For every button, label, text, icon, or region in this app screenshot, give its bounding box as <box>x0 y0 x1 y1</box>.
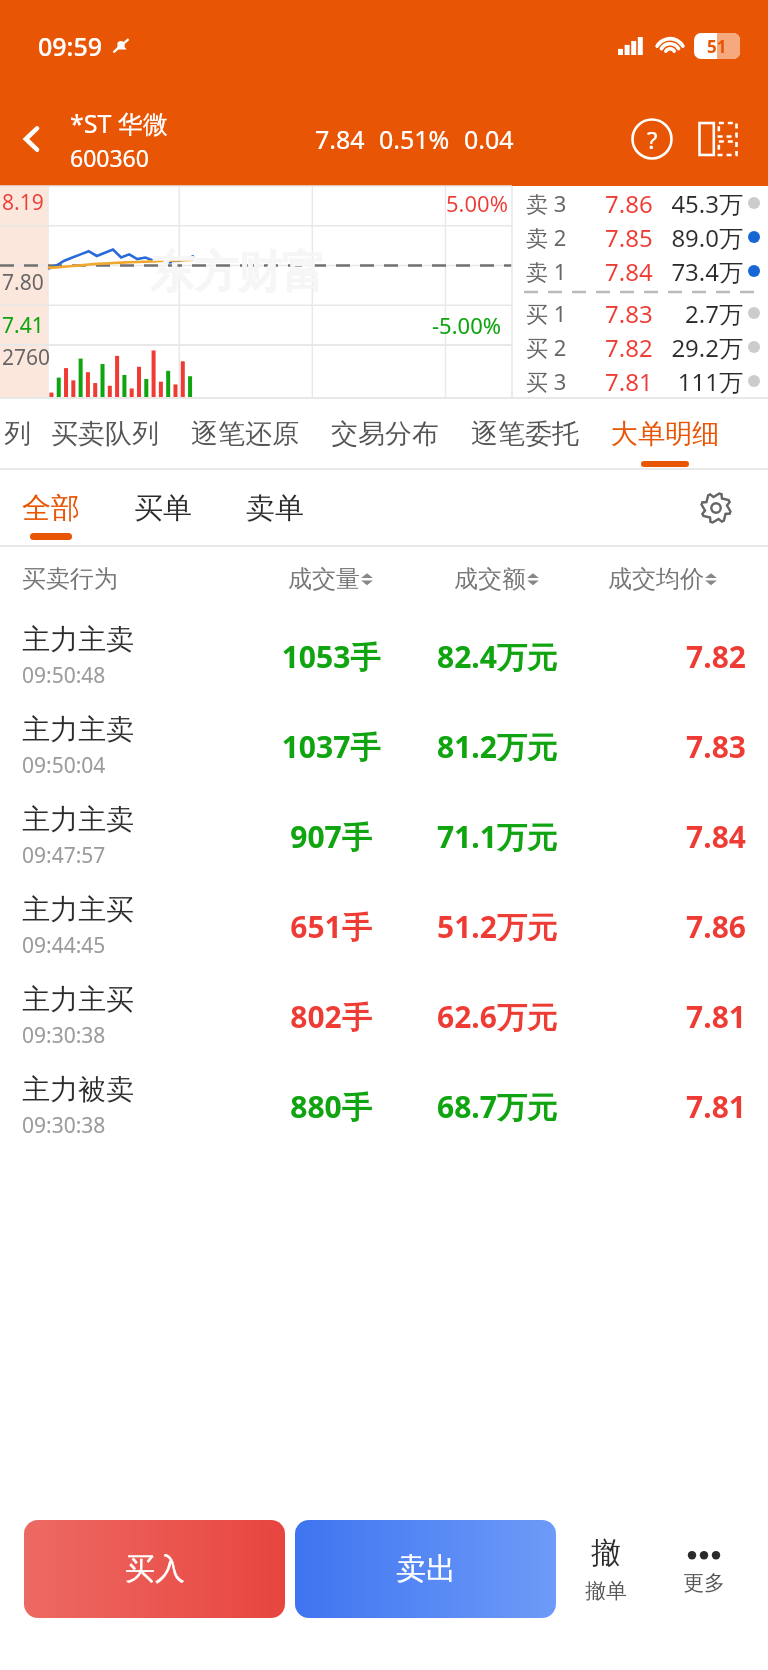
staticText: 买卖队列 <box>51 417 159 451</box>
staticText: 主力主卖 <box>22 712 134 747</box>
staticText: 82.4万元 <box>414 636 580 677</box>
staticText: 907手 <box>248 816 414 857</box>
staticText: 买卖行为 <box>22 564 248 594</box>
button[interactable]: 卖 2 <box>512 220 768 254</box>
staticText: 卖单 <box>246 490 304 527</box>
staticText: 7.41 <box>2 311 44 340</box>
button[interactable]: 卖 3 <box>512 186 768 220</box>
staticText: 列 <box>4 417 31 451</box>
staticText: 73.4万 <box>659 255 743 288</box>
staticText: 7.82 <box>605 331 653 364</box>
staticText: 主力主买 <box>22 892 134 927</box>
staticText: 1037手 <box>248 726 414 767</box>
staticText: 卖 1 <box>526 256 567 286</box>
button[interactable]: 更多 <box>656 1494 752 1644</box>
staticText: 7.83 <box>605 297 653 330</box>
staticText: 买入 <box>125 1550 185 1588</box>
staticText: 成交额 <box>454 564 526 594</box>
button[interactable]: 主力主卖 <box>0 611 768 701</box>
staticText: 62.6万元 <box>414 996 580 1037</box>
button[interactable]: 列 <box>4 399 31 469</box>
staticText: 651手 <box>248 906 414 947</box>
button[interactable]: 卖 1 <box>512 254 768 288</box>
button[interactable]: 成交量 <box>248 564 414 594</box>
staticText: 逐笔还原 <box>191 417 299 451</box>
staticText: 卖出 <box>396 1550 456 1588</box>
button[interactable]: 主力主买 <box>0 881 768 971</box>
staticText: 8.19 <box>2 188 44 217</box>
staticText: 71.1万元 <box>414 816 580 857</box>
staticText: 111万 <box>659 365 743 398</box>
staticText: 7.85 <box>605 221 653 254</box>
staticText: 2760 <box>2 343 51 372</box>
staticText: 7.81 <box>580 996 746 1037</box>
staticText: 全部 <box>22 490 80 527</box>
staticText: 7.83 <box>580 726 746 767</box>
button[interactable]: Settings <box>688 480 744 536</box>
staticText: 7.81 <box>580 1086 746 1127</box>
button[interactable]: 逐笔委托 <box>471 399 579 469</box>
button[interactable]: 主力主卖 <box>0 701 768 791</box>
staticText: 东方财富 <box>150 245 326 300</box>
button[interactable]: 主力被卖 <box>0 1061 768 1151</box>
staticText: -5.00% <box>432 310 502 340</box>
button[interactable]: 买卖队列 <box>51 399 159 469</box>
button[interactable]: 全部 <box>22 470 80 546</box>
staticText: 68.7万元 <box>414 1086 580 1127</box>
button[interactable]: 主力主卖 <box>0 791 768 881</box>
staticText: 0.51% <box>379 122 450 156</box>
staticText: 802手 <box>248 996 414 1037</box>
button[interactable]: 买 2 <box>512 330 768 364</box>
button[interactable]: 主力主买 <box>0 971 768 1061</box>
button[interactable]: 大单明细 <box>611 399 719 469</box>
button[interactable]: 卖出 <box>295 1520 556 1618</box>
button[interactable]: 卖单 <box>246 470 304 546</box>
button[interactable]: 撤 <box>556 1494 656 1644</box>
staticText: 09:30:38 <box>22 1111 106 1140</box>
staticText: 09:44:45 <box>22 931 106 960</box>
button[interactable]: Help <box>622 109 682 169</box>
staticText: 7.84 <box>315 122 365 156</box>
staticText: 买单 <box>134 490 192 527</box>
staticText: 主力主卖 <box>22 802 134 837</box>
staticText: 7.86 <box>605 187 653 220</box>
staticText: 09:47:57 <box>22 841 106 870</box>
staticText: 09:30:38 <box>22 1021 106 1050</box>
staticText: 成交均价 <box>608 564 704 594</box>
staticText: 0.04 <box>464 122 514 156</box>
staticText: 45.3万 <box>659 187 743 220</box>
button[interactable]: 交易分布 <box>331 399 439 469</box>
staticText: 7.81 <box>605 365 653 398</box>
staticText: 89.0万 <box>659 221 743 254</box>
staticText: 09:59 <box>38 29 103 63</box>
staticText: 撤 <box>591 1534 621 1572</box>
staticText: 成交量 <box>288 564 360 594</box>
button[interactable]: 买 3 <box>512 364 768 398</box>
staticText: 7.84 <box>605 255 653 288</box>
staticText: 主力主买 <box>22 982 134 1017</box>
staticText: 09:50:04 <box>22 751 106 780</box>
staticText: 主力主卖 <box>22 622 134 657</box>
staticText: 7.86 <box>580 906 746 947</box>
staticText: 买 1 <box>526 298 567 328</box>
staticText: 卖 2 <box>526 222 567 252</box>
staticText: 51 <box>707 35 727 58</box>
staticText: 更多 <box>683 1570 725 1596</box>
staticText: 29.2万 <box>659 331 743 364</box>
button[interactable]: 买单 <box>134 470 192 546</box>
staticText: 大单明细 <box>611 417 719 451</box>
button[interactable]: 成交均价 <box>580 564 746 594</box>
staticText: 买 3 <box>526 366 567 396</box>
staticText: 7.82 <box>580 636 746 677</box>
staticText: 1053手 <box>248 636 414 677</box>
button[interactable]: 逐笔还原 <box>191 399 299 469</box>
button[interactable]: 买入 <box>24 1520 285 1618</box>
button[interactable]: Layout <box>688 109 748 169</box>
staticText: 7.84 <box>580 816 746 857</box>
staticText: 主力被卖 <box>22 1072 134 1107</box>
button[interactable]: 成交额 <box>414 564 580 594</box>
staticText: 卖 3 <box>526 188 567 218</box>
staticText: ? <box>647 123 658 156</box>
button[interactable]: 买 1 <box>512 296 768 330</box>
button[interactable]: Back <box>0 107 64 171</box>
